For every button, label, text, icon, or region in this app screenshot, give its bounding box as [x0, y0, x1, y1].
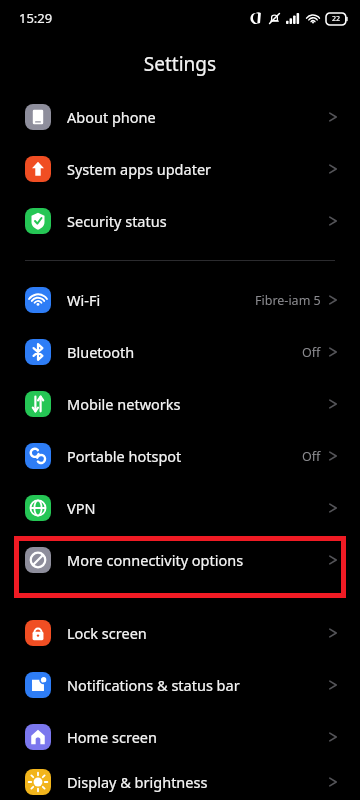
staticText: Fibre-iam 5	[255, 292, 321, 309]
staticText: Notifications & status bar	[67, 675, 328, 695]
button[interactable]: Bluetooth	[0, 326, 360, 378]
staticText: 22	[332, 14, 341, 24]
staticText: 15:29	[19, 9, 53, 27]
staticText: Portable hotspot	[67, 446, 302, 466]
button[interactable]: More connectivity options	[0, 534, 360, 586]
button[interactable]: Wi-Fi	[0, 274, 360, 326]
button[interactable]: Home screen	[0, 711, 360, 763]
button[interactable]: Security status	[0, 195, 360, 247]
button[interactable]: About phone	[0, 91, 360, 143]
staticText: About phone	[67, 107, 328, 127]
button[interactable]: Lock screen	[0, 607, 360, 659]
button[interactable]: System apps updater	[0, 143, 360, 195]
staticText: Off	[302, 344, 321, 361]
staticText: Bluetooth	[67, 342, 302, 362]
staticText: Off	[302, 448, 321, 465]
staticText: More connectivity options	[67, 550, 328, 570]
button[interactable]: Notifications & status bar	[0, 659, 360, 711]
staticText: Settings	[0, 51, 360, 77]
staticText: Mobile networks	[67, 394, 328, 414]
button[interactable]: Portable hotspot	[0, 430, 360, 482]
staticText: Security status	[67, 211, 328, 231]
button[interactable]: VPN	[0, 482, 360, 534]
staticText: System apps updater	[67, 159, 328, 179]
staticText: Home screen	[67, 727, 328, 747]
staticText: Lock screen	[67, 623, 328, 643]
staticText: Wi-Fi	[67, 290, 255, 310]
button[interactable]: Display & brightness	[0, 763, 360, 800]
button[interactable]: Mobile networks	[0, 378, 360, 430]
staticText: Display & brightness	[67, 772, 328, 792]
staticText: VPN	[67, 498, 328, 518]
